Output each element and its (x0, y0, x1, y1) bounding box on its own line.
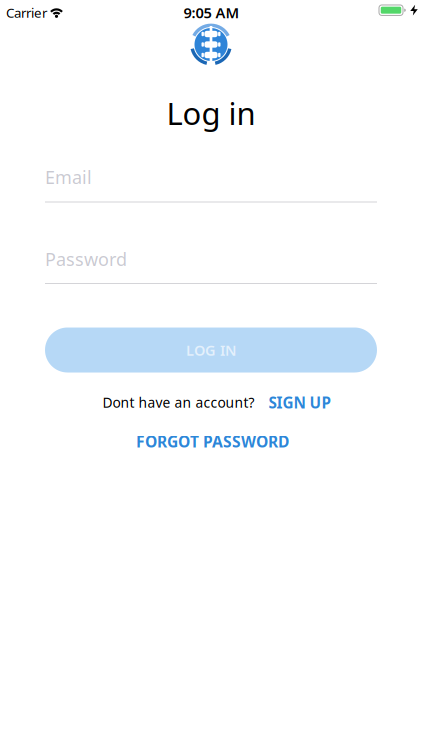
staticText: Dont have an account? (102, 393, 254, 412)
button[interactable]: LOG IN (45, 327, 377, 372)
staticText: FORGOT PASSWORD (136, 431, 289, 452)
button[interactable]: Password (45, 236, 377, 284)
staticText: Log in (166, 92, 255, 134)
button[interactable]: FORGOT PASSWORD (136, 431, 289, 452)
button[interactable]: SIGN UP (268, 392, 331, 413)
staticText: LOG IN (186, 340, 236, 360)
staticText: Email (45, 165, 92, 189)
staticText: Password (45, 247, 127, 271)
button[interactable]: Email (45, 154, 377, 202)
staticText: 9:05 AM (183, 2, 239, 22)
staticText: Carrier (6, 3, 47, 21)
staticText: SIGN UP (268, 392, 331, 413)
